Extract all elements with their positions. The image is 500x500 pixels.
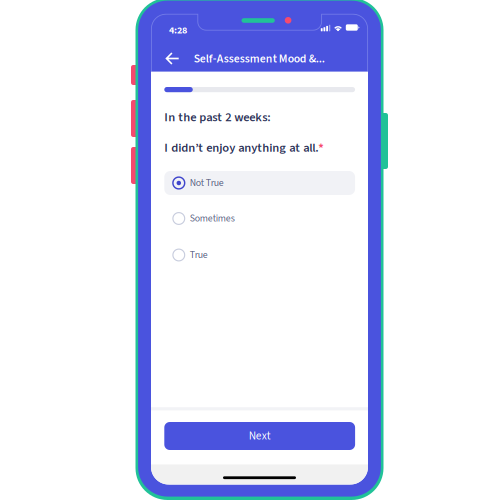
button[interactable]: Next (164, 422, 355, 450)
staticText: True (190, 248, 208, 262)
button[interactable]: Back (166, 52, 180, 65)
staticText: Not True (190, 176, 224, 190)
staticText: Next (249, 428, 271, 444)
staticText: * (318, 139, 323, 156)
button[interactable]: True (164, 243, 355, 267)
button[interactable]: Not True (164, 171, 355, 195)
button[interactable]: Sometimes (164, 206, 355, 230)
staticText: Sometimes (190, 211, 235, 226)
staticText: In the past 2 weeks: (164, 108, 270, 126)
staticText: I didn’t enjoy anything at all. (164, 139, 318, 157)
staticText: Self-Assessment Mood &... (194, 50, 325, 67)
staticText: 4:28 (169, 23, 187, 37)
